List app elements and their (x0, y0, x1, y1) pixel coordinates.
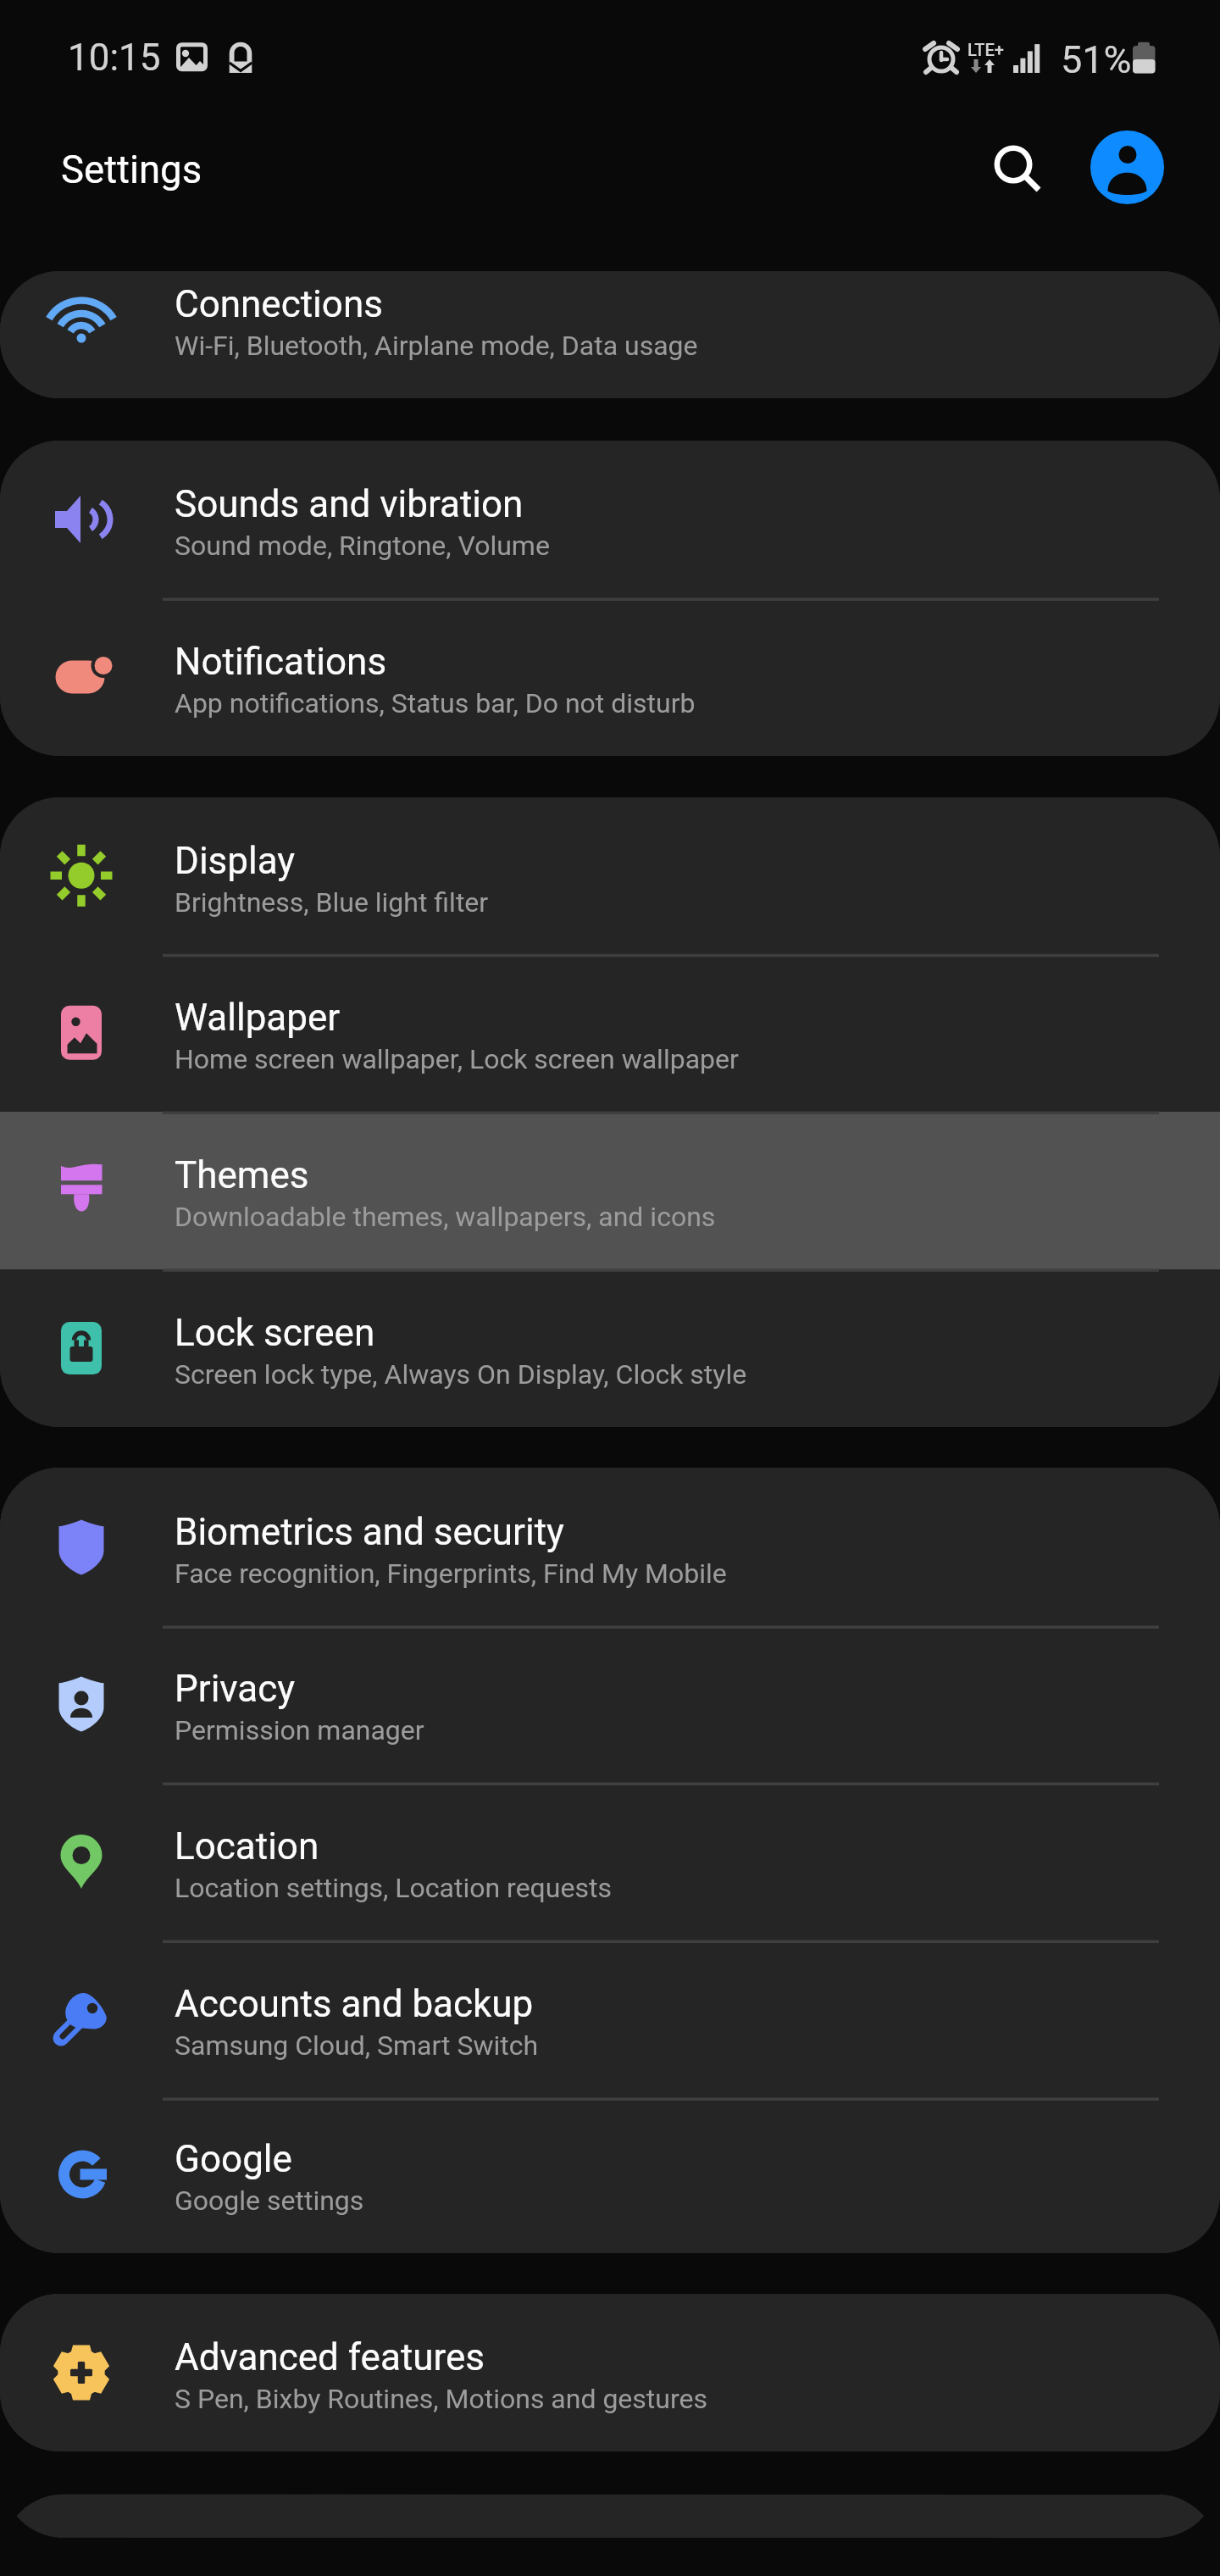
staticText: Notifications (175, 640, 387, 684)
staticText: Permission manager (175, 1714, 424, 1746)
staticText: Face recognition, Fingerprints, Find My … (175, 1557, 727, 1590)
staticText: Sound mode, Ringtone, Volume (175, 530, 550, 562)
button[interactable]: Wallpaper (0, 954, 1220, 1112)
staticText: Accounts and backup (175, 1982, 534, 2026)
staticText: App notifications, Status bar, Do not di… (175, 687, 696, 719)
staticText: S Pen, Bixby Routines, Motions and gestu… (175, 2383, 707, 2415)
staticText: Themes (175, 1153, 309, 1197)
button[interactable]: Search (966, 117, 1061, 212)
button[interactable]: Connections (0, 271, 1220, 398)
staticText: Samsung Cloud, Smart Switch (175, 2029, 539, 2062)
staticText: Wi-Fi, Bluetooth, Airplane mode, Data us… (175, 330, 698, 362)
button[interactable]: Display (0, 797, 1220, 954)
button[interactable]: Sounds and vibration (0, 441, 1220, 598)
staticText: Home screen wallpaper, Lock screen wallp… (175, 1043, 739, 1075)
staticText: Privacy (175, 1667, 296, 1711)
staticText: Wallpaper (175, 996, 341, 1040)
staticText: Display (175, 839, 296, 883)
button[interactable]: Biometrics and security (0, 1468, 1220, 1626)
button[interactable]: Notifications (0, 598, 1220, 756)
staticText: Google settings (175, 2185, 364, 2217)
staticText: Connections (175, 282, 383, 326)
button[interactable]: Accounts and backup (0, 1940, 1220, 2098)
button[interactable]: Themes (0, 1112, 1220, 1269)
staticText: Lock screen (175, 1311, 375, 1355)
staticText: Downloadable themes, wallpapers, and ico… (175, 1201, 716, 1233)
button[interactable]: Location (0, 1783, 1220, 1940)
staticText: LTE+ (968, 40, 1004, 59)
staticText: Sounds and vibration (175, 482, 524, 526)
staticText: 51% (1061, 37, 1132, 82)
staticText: 10:15 (68, 36, 161, 80)
button[interactable]: Google (0, 2098, 1220, 2253)
button[interactable]: Privacy (0, 1626, 1220, 1783)
button[interactable]: Lock screen (0, 1269, 1220, 1427)
button[interactable]: Advanced features (0, 2294, 1220, 2451)
staticText: Screen lock type, Always On Display, Clo… (175, 1358, 747, 1391)
button[interactable]: Account (1090, 130, 1164, 204)
staticText: Brightness, Blue light filter (175, 886, 489, 919)
staticText: Location (175, 1824, 319, 1868)
staticText: Settings (61, 147, 202, 192)
staticText: Biometrics and security (175, 1510, 564, 1554)
staticText: Google (175, 2137, 292, 2181)
staticText: Advanced features (175, 2335, 485, 2379)
staticText: Location settings, Location requests (175, 1872, 612, 1904)
